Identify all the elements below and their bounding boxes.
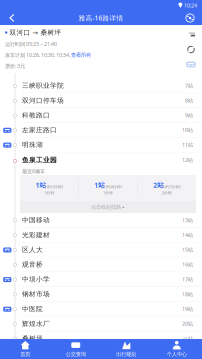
staticText: 18站 bbox=[182, 291, 193, 298]
staticText: 钢材市场 bbox=[22, 290, 50, 298]
button[interactable]: 鱼泉工业园 bbox=[0, 152, 202, 167]
staticText: 1分钟 bbox=[44, 190, 54, 195]
staticText: 明珠湖 bbox=[22, 141, 43, 149]
button[interactable]: 中医院 bbox=[0, 302, 202, 317]
staticText: 15站 bbox=[182, 246, 193, 253]
staticText: 1站 bbox=[35, 181, 46, 189]
staticText: (约1分钟) bbox=[47, 184, 63, 189]
staticText: 19站 bbox=[182, 305, 193, 312]
button[interactable]: 明珠湖 bbox=[0, 138, 202, 152]
staticText: 16站 bbox=[182, 261, 193, 268]
button[interactable]: 个人中心 bbox=[151, 339, 202, 359]
button[interactable]: 桑树坪 bbox=[0, 331, 202, 346]
staticText: 中国移动 bbox=[22, 216, 50, 224]
button[interactable]: 区人大 bbox=[0, 243, 202, 257]
staticText: 票价: 3元 bbox=[5, 62, 25, 70]
button[interactable]: 点击收起线路 bbox=[0, 201, 202, 213]
staticText: 雅高-16路详情 bbox=[78, 14, 123, 22]
staticText: 11站 bbox=[182, 141, 193, 148]
staticText: 点击收起线路 bbox=[91, 204, 121, 210]
staticText: 双河口 → 桑树坪 bbox=[10, 28, 62, 37]
staticText: 7站 bbox=[185, 82, 193, 89]
staticText: 8站 bbox=[185, 97, 193, 104]
staticText: 12站 bbox=[182, 156, 193, 164]
button[interactable]: 辉煌水厂 bbox=[0, 317, 202, 331]
button[interactable]: Back bbox=[0, 11, 24, 25]
button[interactable]: 光彩建材 bbox=[0, 228, 202, 243]
staticText: 区人大 bbox=[22, 246, 43, 254]
button[interactable]: Switch direction bbox=[183, 27, 199, 42]
button[interactable]: Refresh bbox=[183, 42, 199, 57]
staticText: 科教路口 bbox=[22, 111, 50, 119]
button[interactable]: 首页 bbox=[0, 339, 50, 359]
staticText: 1分钟 bbox=[103, 190, 113, 195]
staticText: 桑树坪 bbox=[22, 334, 43, 343]
button[interactable]: 双河口停车场 bbox=[0, 93, 202, 108]
button[interactable]: 查看所有 bbox=[71, 52, 91, 58]
button[interactable]: Buses on route bbox=[183, 57, 199, 72]
staticText: 左家庄路口 bbox=[22, 126, 57, 134]
button[interactable]: 出行规划 bbox=[101, 339, 151, 359]
staticText: 中坝小学 bbox=[22, 275, 50, 283]
button[interactable]: 中坝小学 bbox=[0, 272, 202, 287]
staticText: 光彩建材 bbox=[22, 231, 50, 239]
staticText: 中医院 bbox=[22, 305, 43, 313]
staticText: (约4分钟) bbox=[106, 184, 122, 189]
staticText: 2站 bbox=[153, 181, 164, 189]
staticText: 21站 bbox=[182, 335, 193, 342]
staticText: 双河口停车场 bbox=[22, 96, 64, 105]
staticText: 查看所有 bbox=[71, 52, 91, 58]
staticText: 辉煌水厂 bbox=[22, 320, 50, 328]
staticText: 运行时间 05:25 ~ 21:40 bbox=[5, 40, 57, 48]
button[interactable]: 观音桥 bbox=[0, 257, 202, 272]
staticText: 13站 bbox=[182, 217, 193, 224]
button[interactable]: 三峡职业学院 bbox=[0, 73, 202, 93]
staticText: 最近6辆车 bbox=[22, 168, 45, 175]
staticText: 10:24 bbox=[184, 2, 197, 9]
staticText: 首页 bbox=[20, 351, 30, 357]
staticText: 17站 bbox=[182, 276, 193, 283]
staticText: (约7分钟) bbox=[164, 184, 180, 189]
button[interactable]: 钢材市场 bbox=[0, 287, 202, 302]
staticText: 观音桥 bbox=[22, 260, 43, 269]
staticText: 公交查询 bbox=[66, 351, 86, 357]
staticText: 20站 bbox=[182, 320, 193, 327]
staticText: 10站 bbox=[182, 126, 193, 134]
staticText: 个人中心 bbox=[167, 351, 187, 357]
staticText: 发车计划 10:26, 10:30, 10:34, bbox=[5, 51, 71, 59]
button[interactable]: 左家庄路口 bbox=[0, 123, 202, 138]
staticText: 出行规划 bbox=[116, 351, 136, 357]
button[interactable]: 科教路口 bbox=[0, 108, 202, 123]
staticText: 2分钟 bbox=[162, 190, 172, 195]
staticText: 14站 bbox=[182, 231, 193, 238]
button[interactable]: 中国移动 bbox=[0, 213, 202, 228]
staticText: 三峡职业学院 bbox=[22, 82, 64, 90]
button[interactable]: Show on map bbox=[178, 11, 202, 25]
staticText: 鱼泉工业园 bbox=[22, 156, 57, 164]
staticText: 9站 bbox=[185, 112, 193, 119]
staticText: 1站 bbox=[94, 181, 105, 189]
button[interactable]: 公交查询 bbox=[50, 339, 101, 359]
